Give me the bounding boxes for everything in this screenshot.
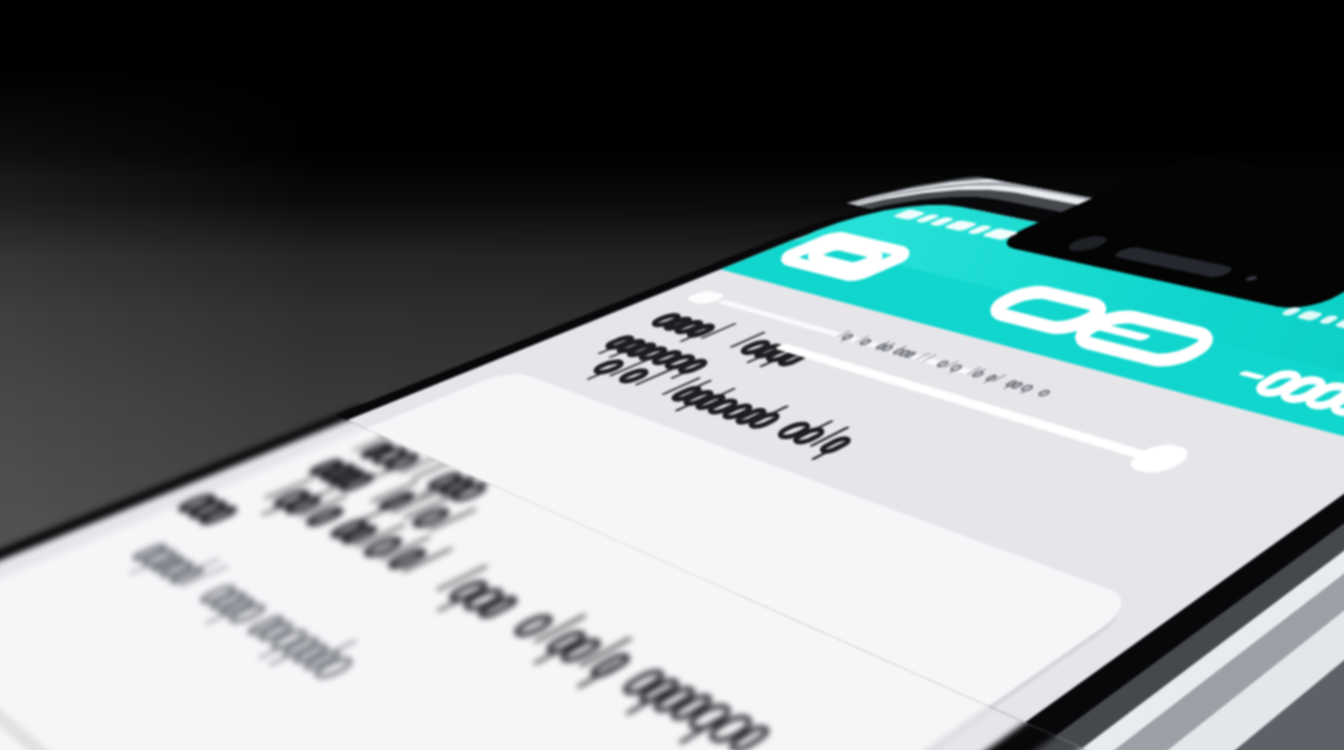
button[interactable] xyxy=(0,0,1344,750)
other: Smartphone app screen mockup xyxy=(0,0,1344,750)
